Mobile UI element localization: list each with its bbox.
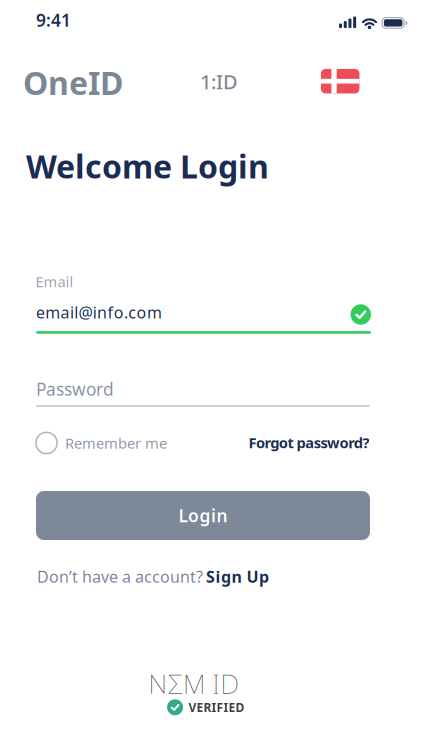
button[interactable]: Password <box>36 377 370 407</box>
staticText: Sign Up <box>206 566 269 587</box>
staticText: Login <box>178 504 227 527</box>
staticText: Password <box>36 377 114 400</box>
staticText: OneID <box>23 61 123 104</box>
staticText: Don’t have a account? <box>37 566 203 587</box>
button[interactable]: Login <box>36 491 370 540</box>
button[interactable]: Sign Up <box>206 566 269 587</box>
button[interactable]: Remember me <box>35 432 167 454</box>
staticText: 9:41 <box>36 8 71 31</box>
button[interactable]: Forgot password? <box>248 433 369 452</box>
staticText: Forgot password? <box>248 433 369 452</box>
staticText: VERIFIED <box>189 699 245 715</box>
staticText: Remember me <box>65 433 167 453</box>
staticText: Email <box>35 272 73 291</box>
button[interactable]: email@info.com <box>36 302 371 334</box>
staticText: Welcome Login <box>26 145 269 187</box>
staticText: 1:ID <box>200 68 238 95</box>
staticText: NΣM ID <box>148 666 238 701</box>
button[interactable] <box>321 69 359 93</box>
staticText: email@info.com <box>36 302 162 323</box>
